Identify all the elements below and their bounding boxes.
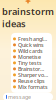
staticText: Tiny tests — [18, 59, 42, 66]
button[interactable]: Wild cards — [11, 48, 52, 54]
staticText: message — [8, 93, 31, 100]
staticText: Brainstorm views — [18, 65, 48, 72]
staticText: Monetise — [18, 53, 41, 60]
button[interactable]: Quick wins — [11, 42, 52, 48]
staticText: Quick wins — [18, 41, 44, 48]
staticText: Sharper voice — [18, 71, 48, 78]
button[interactable]: Reuse clips — [11, 78, 52, 84]
staticText: Fresh angles — [18, 35, 48, 42]
staticText: brainstorm ideas — [2, 5, 54, 30]
button[interactable]: Sharper voice — [11, 72, 52, 78]
button[interactable]: message — [3, 93, 53, 100]
button[interactable]: Fresh angles — [11, 36, 52, 42]
staticText: Reuse clips — [18, 77, 45, 84]
button[interactable]: Monetise — [11, 54, 52, 60]
button[interactable]: Mix formats — [11, 84, 52, 90]
button[interactable]: Brainstorm views — [11, 66, 52, 72]
staticText: Mix formats — [18, 83, 48, 90]
staticText: Wild cards — [18, 47, 43, 54]
button[interactable]: Tiny tests — [11, 60, 52, 66]
